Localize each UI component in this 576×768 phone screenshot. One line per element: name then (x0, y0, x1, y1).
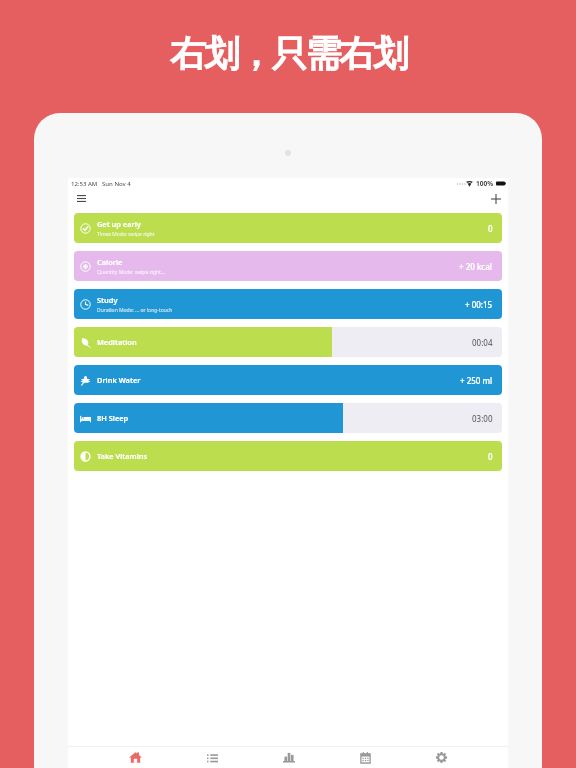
staticText: Drink Water (97, 375, 141, 385)
staticText: Take Vitamins (97, 451, 148, 461)
button[interactable]: Study (74, 289, 502, 319)
staticText: Meditation (97, 337, 137, 347)
staticText: Study (97, 295, 118, 305)
button[interactable]: Add habit (488, 191, 503, 206)
staticText: 100% (476, 179, 494, 188)
button[interactable]: Home (97, 747, 174, 768)
staticText: 0 (488, 223, 493, 234)
staticText: 8H Sleep (97, 413, 129, 423)
staticText: 03:00 (472, 413, 493, 424)
staticText: Get up early (97, 219, 141, 229)
button[interactable]: Menu (74, 191, 89, 206)
button[interactable]: Calendar (327, 747, 403, 768)
button[interactable]: Calorie (74, 251, 502, 281)
button[interactable]: Settings (403, 747, 479, 768)
button[interactable]: List (174, 747, 251, 768)
staticText: Quantity Mode: swipe right... (97, 269, 165, 276)
staticText: + 250 ml (460, 375, 493, 386)
staticText: 右划，只需右划 (170, 31, 407, 76)
staticText: Duration Mode: ... or long-touch (97, 307, 173, 314)
staticText: 00:04 (472, 337, 493, 348)
staticText: Times Mode: swipe right (97, 231, 155, 238)
staticText: + 20 kcal (459, 261, 493, 272)
button[interactable]: Get up early (74, 213, 502, 243)
staticText: 0 (488, 451, 493, 462)
button[interactable]: Drink Water (74, 365, 502, 395)
button[interactable]: 8H Sleep (74, 403, 502, 433)
button[interactable]: Meditation (74, 327, 502, 357)
staticText: + 00:15 (465, 299, 493, 310)
button[interactable]: Take Vitamins (74, 441, 502, 471)
staticText: Calorie (97, 257, 123, 267)
staticText: 12:53 AM Sun Nov 4 (71, 180, 131, 188)
button[interactable]: Statistics (251, 747, 327, 768)
